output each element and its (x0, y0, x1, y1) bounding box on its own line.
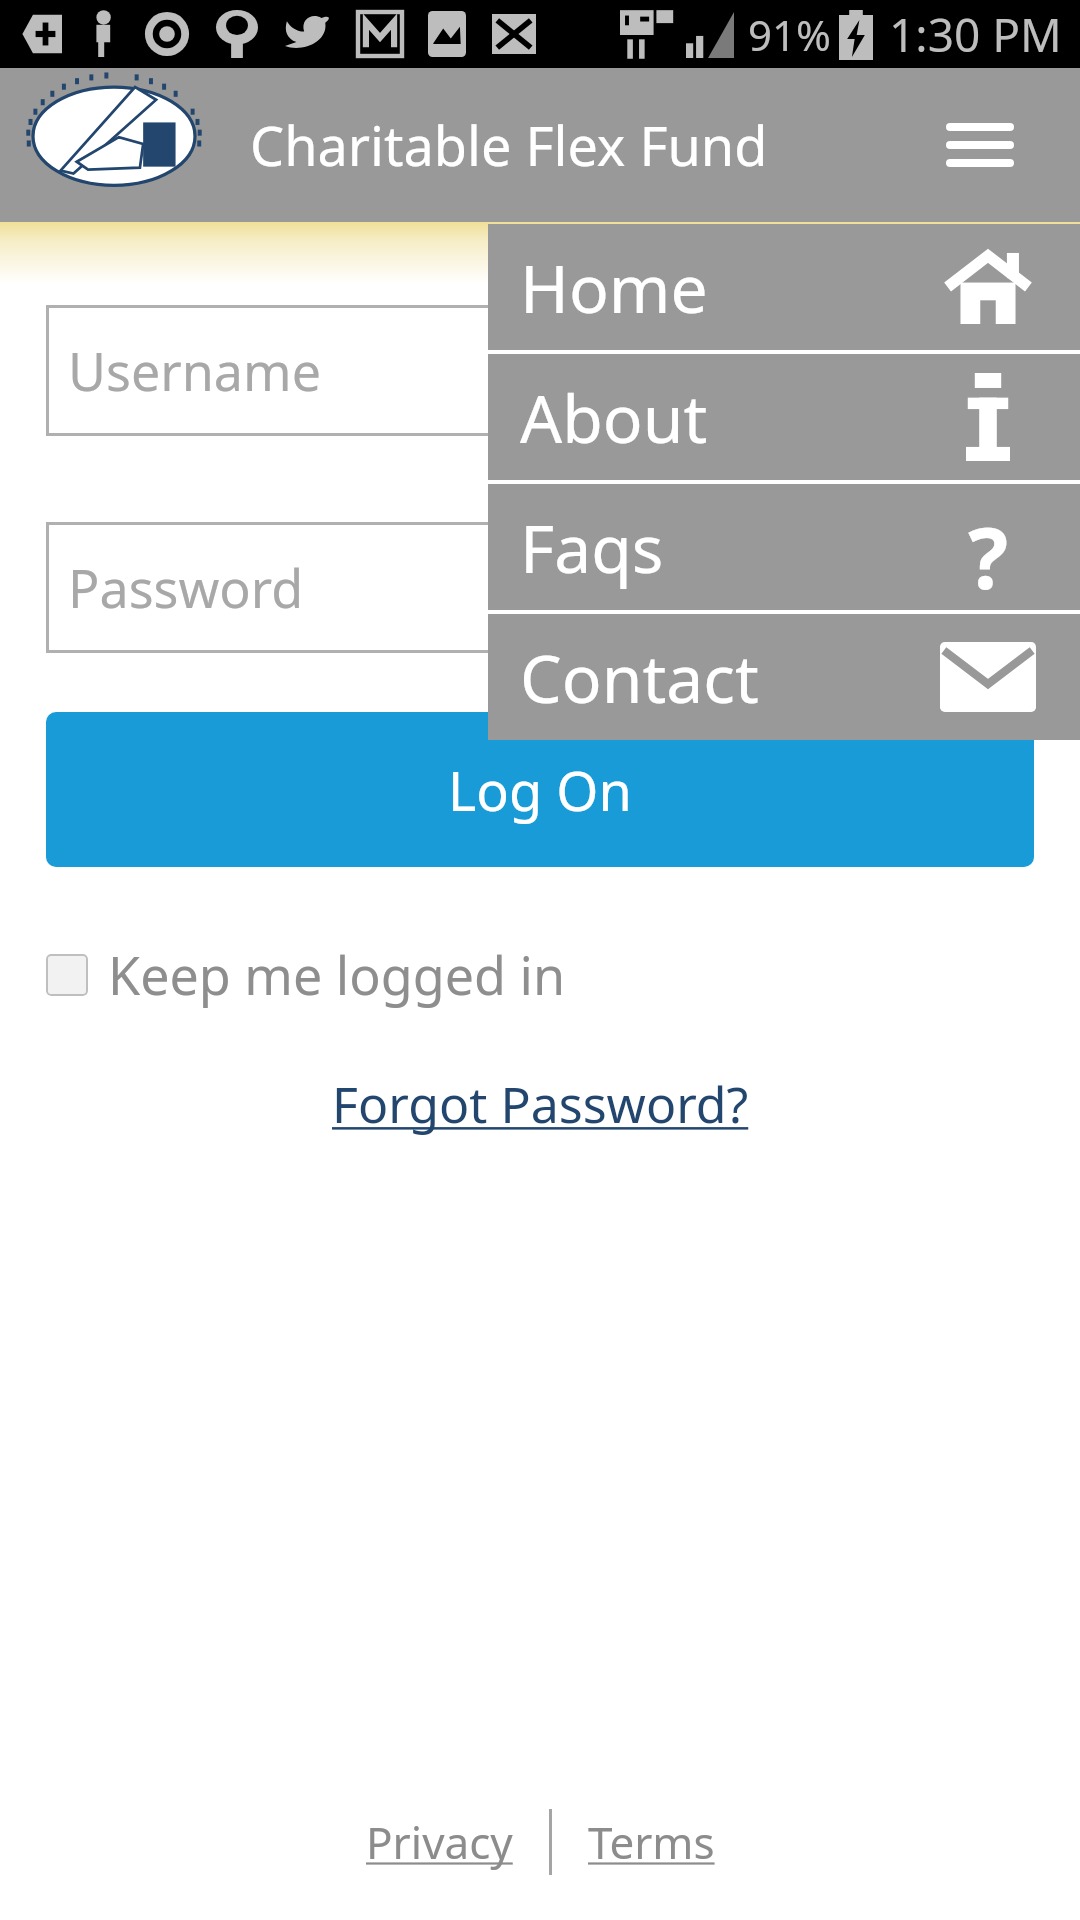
button[interactable]: Keep me logged in (46, 935, 566, 1014)
staticText: Contact (520, 632, 759, 722)
staticText: Home (520, 242, 708, 332)
button[interactable]: Username (46, 305, 1034, 436)
button[interactable]: About (488, 354, 1080, 480)
staticText: ? (968, 499, 1009, 595)
button[interactable]: Faqs (488, 484, 1080, 610)
staticText: Password (68, 552, 304, 623)
button[interactable]: Log On (46, 712, 1034, 867)
button[interactable]: Menu (932, 108, 1028, 182)
staticText: Charitable Flex Fund (250, 108, 768, 182)
staticText: Keep me logged in (108, 939, 566, 1010)
button[interactable]: Contact (488, 614, 1080, 740)
staticText: Username (68, 335, 321, 406)
staticText: Faqs (520, 502, 664, 592)
staticText: About (520, 372, 708, 462)
button[interactable]: Home (488, 224, 1080, 350)
button[interactable]: Forgot Password? (326, 1064, 755, 1144)
button[interactable]: Terms (578, 1804, 725, 1880)
button[interactable]: Password (46, 522, 1034, 653)
button[interactable]: Privacy (356, 1804, 523, 1880)
staticText: Log On (448, 753, 632, 827)
staticText: 1:30 PM (889, 3, 1062, 66)
staticText: 91% (748, 6, 831, 63)
